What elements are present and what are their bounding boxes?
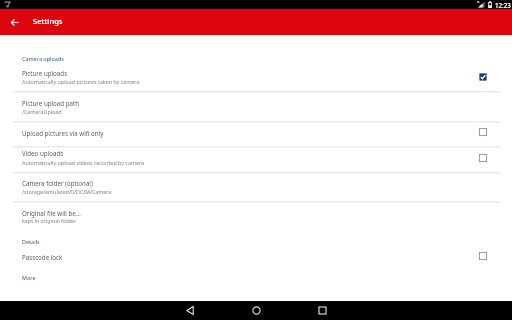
staticText: Original file will be... — [22, 209, 81, 217]
staticText: Automatically upload pictures taken by c… — [22, 78, 140, 85]
staticText: Video uploads — [22, 149, 64, 157]
button[interactable]: Picture upload path — [0, 92, 512, 121]
button[interactable]: Picture uploads — [0, 63, 512, 91]
button[interactable]: Upload pictures via wifi only — [0, 122, 512, 146]
button[interactable]: Home — [223, 301, 289, 320]
staticText: Automatically upload videos recorded by … — [22, 159, 145, 166]
button[interactable]: Original file will be... — [0, 202, 512, 232]
staticText: Picture uploads — [22, 69, 68, 77]
staticText: kept in original folder — [22, 217, 77, 224]
staticText: 12:23 — [495, 1, 511, 9]
button[interactable]: Navigate up — [0, 9, 29, 35]
other: Video uploads — [479, 154, 487, 162]
button[interactable]: Passcode lock — [0, 248, 512, 268]
staticText: /CameraUpload — [22, 108, 62, 115]
button[interactable]: Recent apps — [289, 301, 355, 320]
staticText: Details — [22, 238, 40, 245]
other: Picture uploads — [479, 73, 487, 81]
staticText: Passcode lock — [22, 253, 63, 261]
staticText: Camera uploads — [22, 55, 64, 62]
button[interactable]: Camera folder (optional) — [0, 173, 512, 201]
staticText: Upload pictures via wifi only — [22, 129, 104, 137]
button[interactable]: Video uploads — [0, 147, 512, 172]
staticText: /storage/emulated/0/DCIM/Camera — [22, 188, 112, 195]
other: Upload pictures via wifi only — [479, 128, 487, 136]
staticText: Settings — [33, 16, 63, 26]
button[interactable]: More — [0, 269, 512, 288]
button[interactable]: Back — [157, 301, 223, 320]
staticText: Camera folder (optional) — [22, 179, 93, 187]
other: Passcode lock — [479, 252, 487, 260]
staticText: More — [22, 274, 36, 281]
staticText: Picture upload path — [22, 99, 80, 107]
